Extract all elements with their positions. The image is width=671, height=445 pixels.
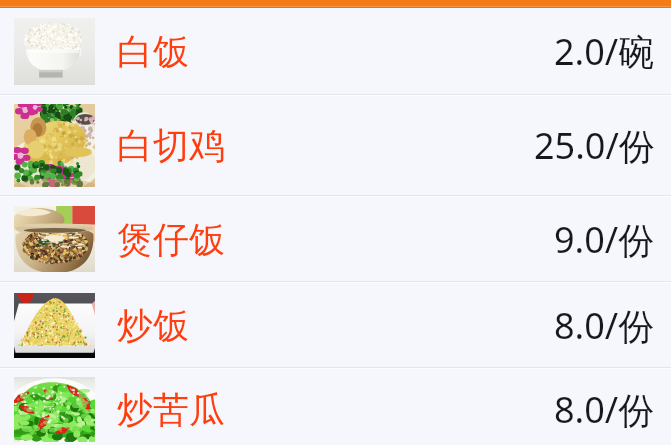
staticText: 25.0/份 xyxy=(534,121,655,170)
button[interactable]: 白饭 xyxy=(0,8,671,94)
staticText: 2.0/碗 xyxy=(554,27,655,76)
button[interactable]: 炒饭 xyxy=(0,283,671,367)
staticText: 8.0/份 xyxy=(554,301,655,350)
staticText: 炒苦瓜 xyxy=(117,387,225,432)
staticText: 白切鸡 xyxy=(117,123,225,168)
staticText: 9.0/份 xyxy=(554,215,655,264)
staticText: 煲仔饭 xyxy=(117,217,225,262)
staticText: 白饭 xyxy=(117,29,189,74)
button[interactable]: 白切鸡 xyxy=(0,96,671,195)
button[interactable]: 炒苦瓜 xyxy=(0,373,671,445)
staticText: 炒饭 xyxy=(117,303,189,348)
staticText: 8.0/份 xyxy=(554,385,655,434)
button[interactable]: 煲仔饭 xyxy=(0,197,671,281)
